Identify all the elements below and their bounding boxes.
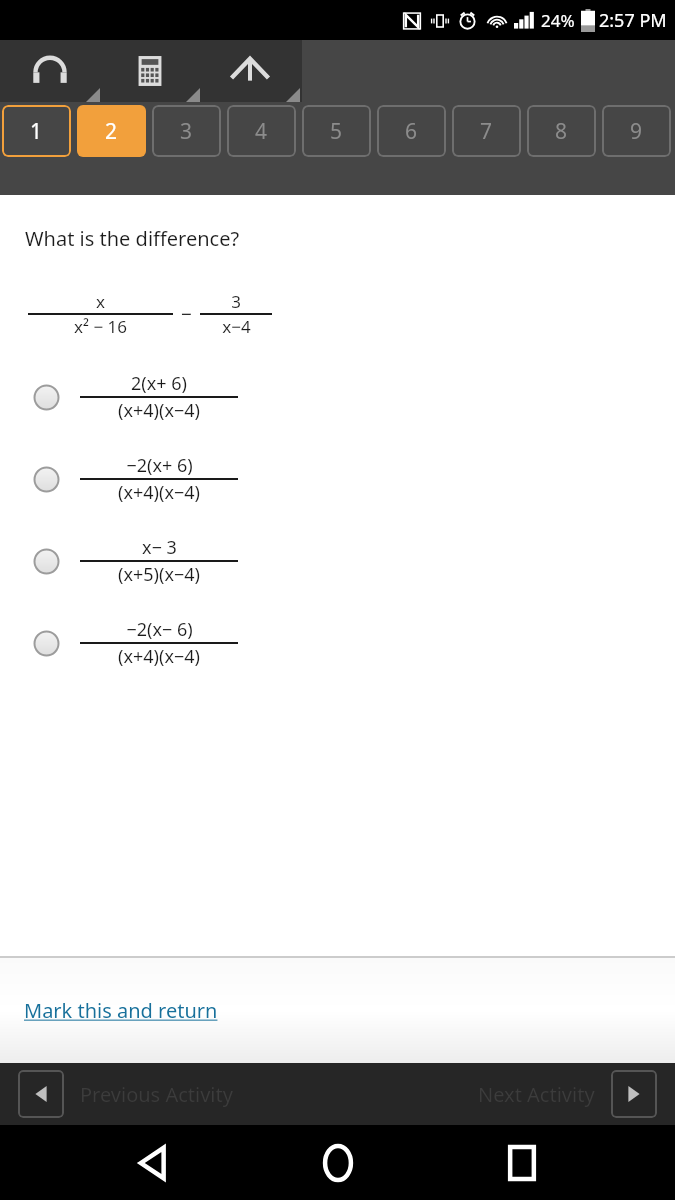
button[interactable]: 2 [77, 105, 146, 157]
staticText: x−4 [222, 315, 251, 338]
button[interactable]: Next Activity [611, 1070, 657, 1118]
staticText: (x+4)(x−4) [118, 644, 200, 669]
staticText: 1 [30, 117, 43, 146]
button[interactable]: Expand [200, 40, 300, 102]
staticText: 6 [405, 117, 418, 146]
staticText: What is the difference? [25, 225, 240, 252]
staticText: 3 [180, 117, 193, 146]
staticText: 2:57 PM [599, 8, 667, 33]
button[interactable]: 1 [2, 105, 71, 157]
button[interactable]: 3 [152, 105, 221, 157]
button[interactable]: −2(x+ 6) [0, 453, 675, 505]
button[interactable]: Mark this and return [24, 997, 218, 1024]
button[interactable]: 7 [452, 105, 521, 157]
staticText: 7 [480, 117, 493, 146]
button[interactable]: 5 [302, 105, 371, 157]
button[interactable]: 8 [527, 105, 596, 157]
staticText: Mark this and return [24, 997, 218, 1024]
staticText: (x+4)(x−4) [118, 398, 200, 423]
staticText: 24% [541, 9, 575, 32]
staticText: x² − 16 [74, 315, 127, 338]
staticText: 2 [105, 117, 118, 146]
staticText: 4 [255, 117, 268, 146]
button[interactable]: x− 3 [0, 535, 675, 587]
button[interactable]: 4 [227, 105, 296, 157]
button[interactable]: 2(x+ 6) [0, 371, 675, 423]
staticText: (x+4)(x−4) [118, 480, 200, 505]
staticText: x [96, 290, 105, 313]
button[interactable]: Previous Activity [18, 1070, 64, 1118]
staticText: 9 [630, 117, 643, 146]
staticText: 8 [555, 117, 568, 146]
button[interactable]: Recent apps [490, 1131, 554, 1195]
staticText: −2(x− 6) [126, 617, 193, 642]
staticText: −2(x+ 6) [126, 453, 193, 478]
staticText: (x+5)(x−4) [118, 562, 200, 587]
button[interactable]: 9 [602, 105, 671, 157]
staticText: Previous Activity [80, 1081, 233, 1108]
staticText: 5 [330, 117, 343, 146]
staticText: x− 3 [142, 535, 177, 560]
button[interactable]: 6 [377, 105, 446, 157]
staticText: Next Activity [478, 1081, 595, 1108]
button[interactable]: Calculator [100, 40, 200, 102]
button[interactable]: Audio [0, 40, 100, 102]
button[interactable]: −2(x− 6) [0, 617, 675, 669]
staticText: 2(x+ 6) [131, 371, 187, 396]
button[interactable]: Home [306, 1131, 370, 1195]
staticText: 3 [231, 290, 241, 313]
staticText: − [181, 301, 192, 327]
button[interactable]: Back [121, 1131, 185, 1195]
